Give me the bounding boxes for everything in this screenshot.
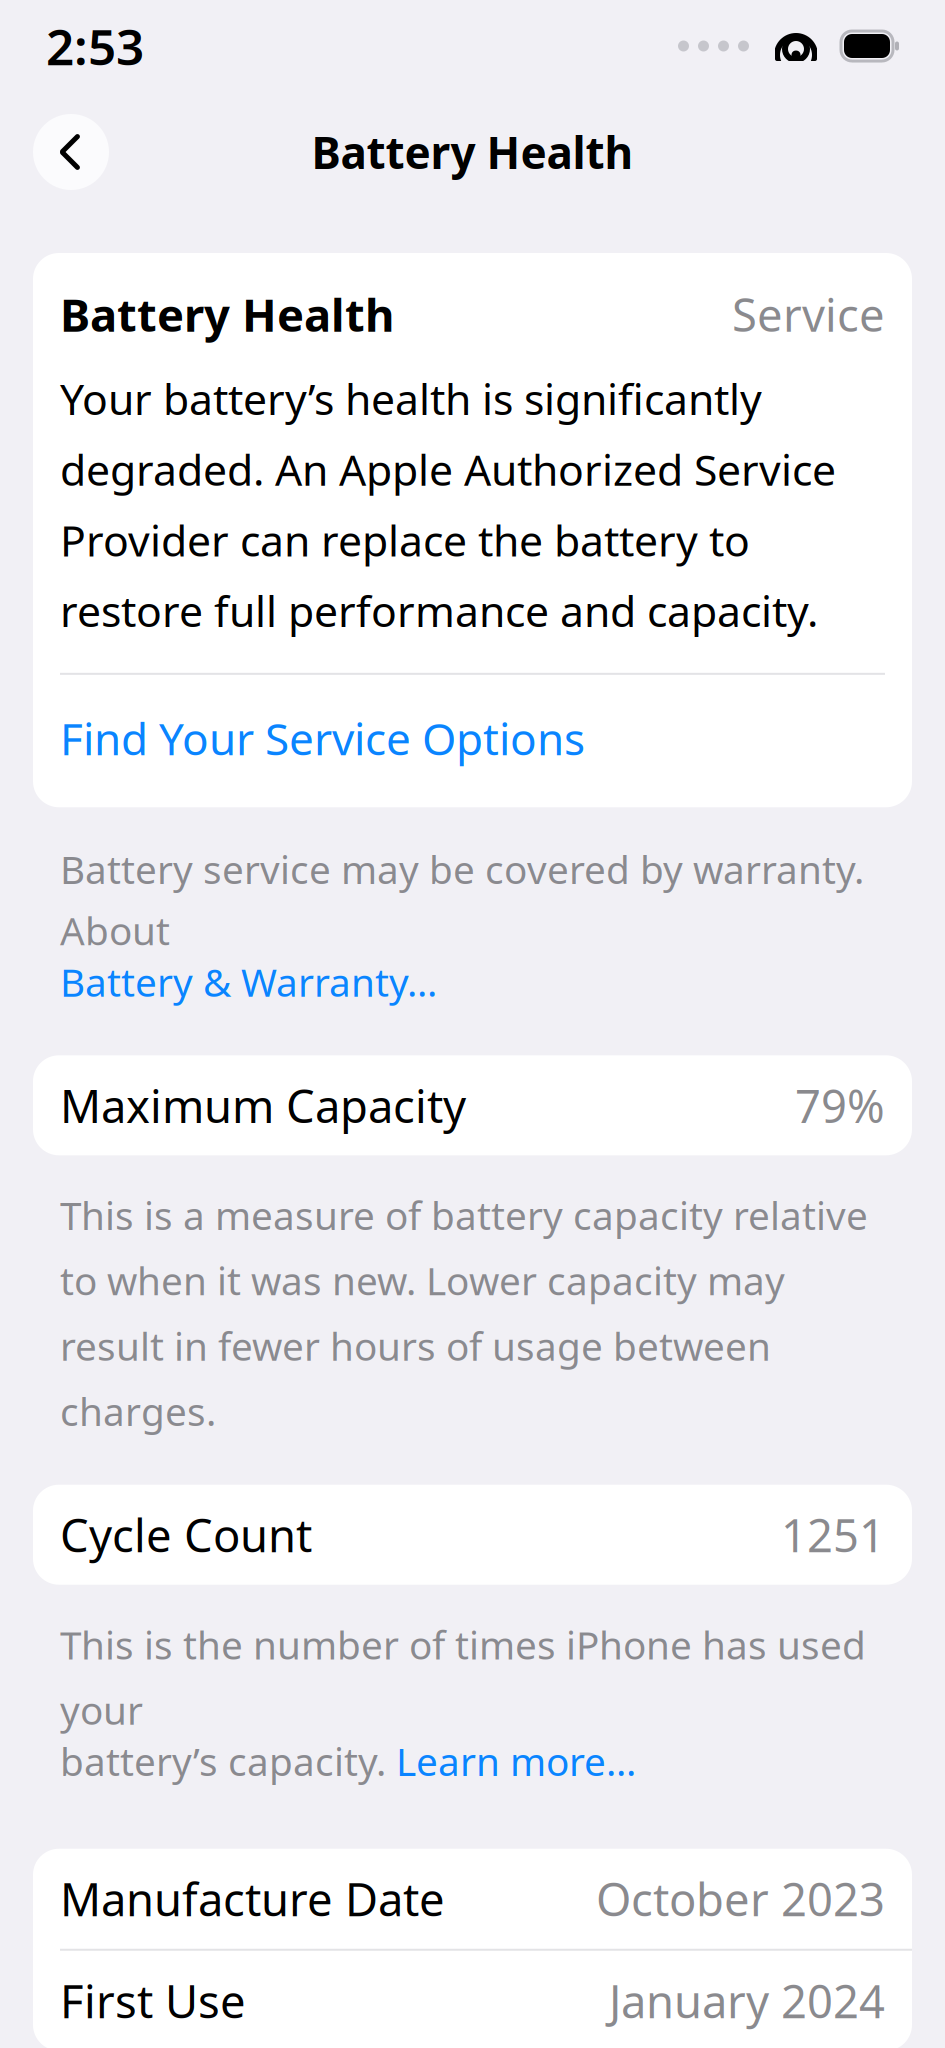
button[interactable]: Find Your Service Options [33, 675, 912, 807]
staticText: Cycle Count [60, 1505, 312, 1565]
staticText: Battery Health [60, 284, 394, 344]
staticText: October 2023 [596, 1869, 885, 1929]
staticText: 1251 [781, 1505, 885, 1565]
staticText: 79% [795, 1075, 885, 1135]
staticText: Learn more... [396, 1735, 636, 1787]
staticText: January 2024 [609, 1971, 885, 2031]
staticText: This is the number of times iPhone has u… [60, 1619, 866, 1735]
staticText: battery’s capacity. [60, 1735, 396, 1787]
staticText: Battery service may be covered by warran… [60, 843, 864, 956]
staticText: Service [732, 284, 885, 344]
staticText: Battery Health [311, 123, 633, 181]
button[interactable]: Cycle Count [33, 1485, 912, 1585]
staticText: 2:53 [46, 13, 144, 79]
button[interactable]: Maximum Capacity [33, 1055, 912, 1155]
staticText: First Use [60, 1971, 246, 2031]
staticText: This is a measure of battery capacity re… [60, 1189, 868, 1437]
button[interactable]: Learn more... [396, 1735, 636, 1787]
button[interactable]: Back [33, 114, 109, 190]
staticText: Your battery’s health is significantly d… [60, 370, 836, 639]
staticText: Battery & Warranty... [60, 956, 437, 1007]
staticText: Maximum Capacity [60, 1075, 466, 1135]
staticText: Find Your Service Options [60, 709, 585, 767]
staticText: Manufacture Date [60, 1869, 445, 1929]
button[interactable]: Battery & Warranty... [60, 956, 437, 1007]
